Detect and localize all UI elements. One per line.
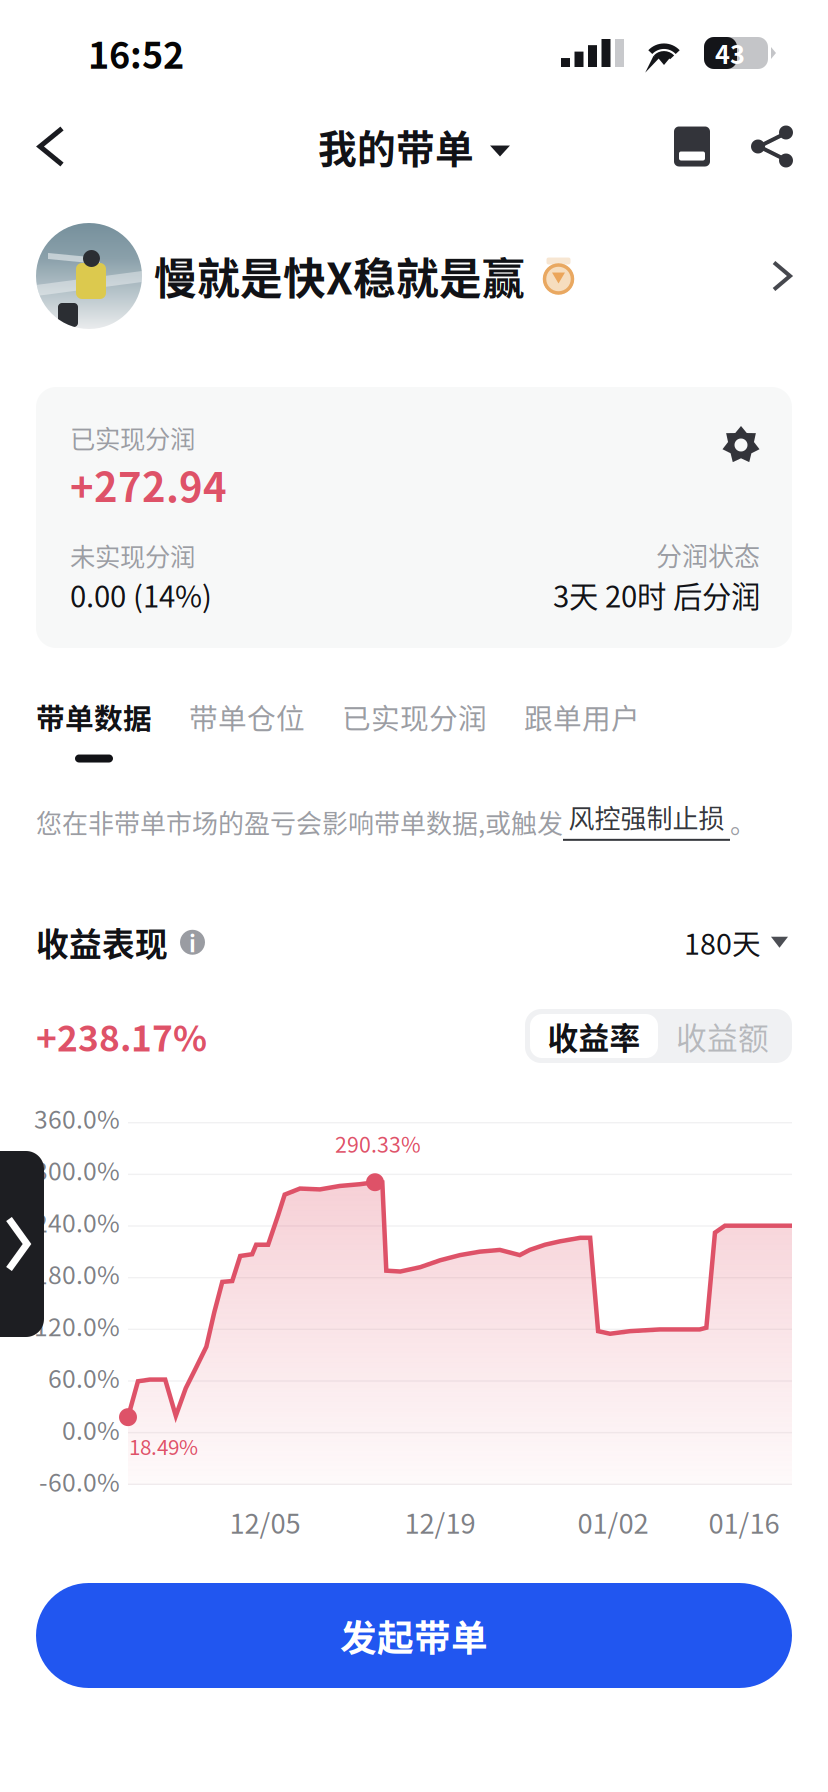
staticText: 收益额: [676, 1014, 769, 1058]
button[interactable]: 已实现分润: [323, 696, 505, 762]
staticText: 180天: [684, 921, 761, 963]
staticText: 。: [730, 803, 756, 841]
staticText: 0.0%: [62, 1411, 120, 1447]
button[interactable]: Expand panel: [0, 1151, 44, 1337]
staticText: 带单数据: [36, 696, 152, 737]
button[interactable]: 带单仓位: [170, 696, 323, 762]
staticText: 您在非带单市场的盈亏会影响带单数据,或触发: [36, 803, 563, 841]
staticText: 收益率: [547, 1014, 640, 1058]
staticText: 300.0%: [34, 1152, 120, 1188]
staticText: 风控强制止损: [568, 798, 724, 836]
staticText: 43: [715, 35, 745, 71]
staticText: 收益表现: [36, 919, 168, 966]
staticText: 290.33%: [335, 1128, 421, 1159]
staticText: 18.49%: [129, 1431, 198, 1461]
staticText: 带单仓位: [189, 696, 305, 737]
staticText: 180.0%: [34, 1256, 120, 1291]
staticText: 跟单用户: [524, 696, 640, 737]
staticText: -60.0%: [39, 1463, 120, 1499]
staticText: 慢就是快X稳就是赢: [154, 245, 525, 307]
staticText: 360.0%: [34, 1100, 120, 1136]
button[interactable]: 慢就是快X稳就是赢: [0, 200, 828, 387]
staticText: 120.0%: [34, 1308, 120, 1343]
staticText: +238.17%: [36, 1010, 207, 1062]
staticText: 分润状态: [656, 536, 760, 573]
staticText: 已实现分润: [70, 419, 195, 456]
staticText: 01/16: [708, 1502, 779, 1542]
button[interactable]: 发起带单: [36, 1583, 792, 1688]
button[interactable]: Back: [20, 102, 82, 190]
staticText: +272.94: [70, 456, 227, 514]
staticText: 我的带单: [318, 118, 474, 174]
staticText: 未实现分润: [70, 537, 195, 573]
staticText: 已实现分润: [342, 696, 487, 737]
staticText: 16:52: [88, 27, 184, 79]
staticText: 12/05: [229, 1502, 300, 1542]
button[interactable]: 带单数据: [17, 696, 170, 762]
button[interactable]: 180天: [678, 915, 794, 969]
staticText: i: [189, 926, 196, 959]
button[interactable]: 收益率: [530, 1014, 658, 1058]
staticText: 发起带单: [340, 1609, 488, 1662]
button[interactable]: Documents: [654, 102, 730, 190]
staticText: 12/19: [404, 1502, 475, 1542]
button[interactable]: 风控强制止损: [563, 798, 730, 841]
button[interactable]: 跟单用户: [505, 696, 658, 762]
staticText: 0.00 (14%): [70, 573, 212, 616]
staticText: 240.0%: [34, 1204, 120, 1240]
button[interactable]: Settings: [722, 419, 760, 464]
staticText: 01/02: [577, 1502, 648, 1542]
staticText: 3天 20时 后分润: [553, 573, 760, 616]
button[interactable]: 收益额: [658, 1014, 787, 1058]
button[interactable]: Share: [734, 102, 810, 190]
button[interactable]: 我的带单: [308, 108, 520, 184]
staticText: 60.0%: [48, 1359, 120, 1395]
